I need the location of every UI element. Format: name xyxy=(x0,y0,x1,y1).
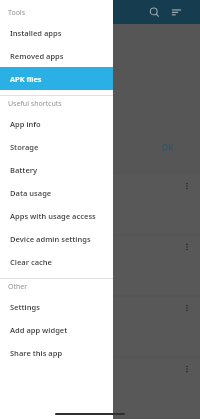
staticText: ...Download" xyxy=(4,331,43,340)
button[interactable]: More options xyxy=(180,362,194,376)
button[interactable]: Apps with usage access xyxy=(0,204,113,227)
button[interactable] xyxy=(0,0,200,419)
staticText: ...single press xyxy=(4,77,52,87)
staticText: Battery xyxy=(10,165,38,175)
button[interactable]: Storage xyxy=(0,135,113,158)
staticText: ...In order to change xyxy=(4,123,76,133)
staticText: Apps with usage access xyxy=(10,211,96,221)
button[interactable]: Clear cache xyxy=(0,250,113,273)
staticText: Clear cache xyxy=(10,257,52,267)
button[interactable]: APK files xyxy=(0,67,113,90)
button[interactable]: Sort xyxy=(167,3,185,21)
button[interactable]: Device admin settings xyxy=(0,227,113,250)
staticText: Share this app xyxy=(10,348,63,358)
staticText: App info xyxy=(10,119,41,129)
button[interactable]: Share this app xyxy=(0,341,113,364)
staticText: ...manager" xyxy=(4,189,40,198)
staticText: ...pictureinsert" xyxy=(4,311,51,320)
staticText: ...3109), version xyxy=(4,280,52,289)
button[interactable]: Data usage xyxy=(0,181,113,204)
button[interactable]: Search xyxy=(145,3,163,21)
staticText: ...order to install the xyxy=(4,55,76,65)
staticText: Settings xyxy=(10,302,40,312)
button[interactable]: More options xyxy=(180,301,194,315)
staticText: Useful shortcuts xyxy=(8,99,62,109)
staticText: APK files xyxy=(10,74,42,84)
staticText: Add app widget xyxy=(10,325,68,335)
button[interactable]: Add app widget xyxy=(0,318,113,341)
staticText: Tools xyxy=(8,8,26,18)
staticText: Other xyxy=(8,282,28,292)
button[interactable]: Settings xyxy=(0,295,113,318)
staticText: ...operations on xyxy=(4,89,60,99)
button[interactable]: More options xyxy=(180,179,194,193)
button[interactable]: ...rowser" xyxy=(0,358,200,417)
staticText: ...8.31.apk" xyxy=(4,321,38,330)
staticText: ...09.apk" xyxy=(4,260,33,269)
button[interactable]: Removed apps xyxy=(0,44,113,67)
staticText: Storage xyxy=(10,142,39,152)
staticText: ...572), version xyxy=(4,219,49,228)
staticText: ...Download" xyxy=(4,209,43,218)
staticText: Removed apps xyxy=(10,51,64,61)
staticText: Data usage xyxy=(10,188,52,198)
button[interactable]: ...manager" xyxy=(0,175,200,234)
staticText: ...Download" xyxy=(4,270,43,279)
button[interactable]: Installed apps xyxy=(0,21,113,44)
button[interactable]: ...pictureinsert" xyxy=(0,297,200,356)
button[interactable]: More options xyxy=(180,240,194,254)
staticText: OK xyxy=(162,142,174,153)
button[interactable]: ...cho" xyxy=(0,236,200,295)
button[interactable]: App info xyxy=(0,112,113,135)
staticText: Installed apps xyxy=(10,28,62,38)
staticText: Device admin settings xyxy=(10,234,91,244)
button[interactable]: Battery xyxy=(0,158,113,181)
button[interactable]: OK xyxy=(156,139,180,156)
